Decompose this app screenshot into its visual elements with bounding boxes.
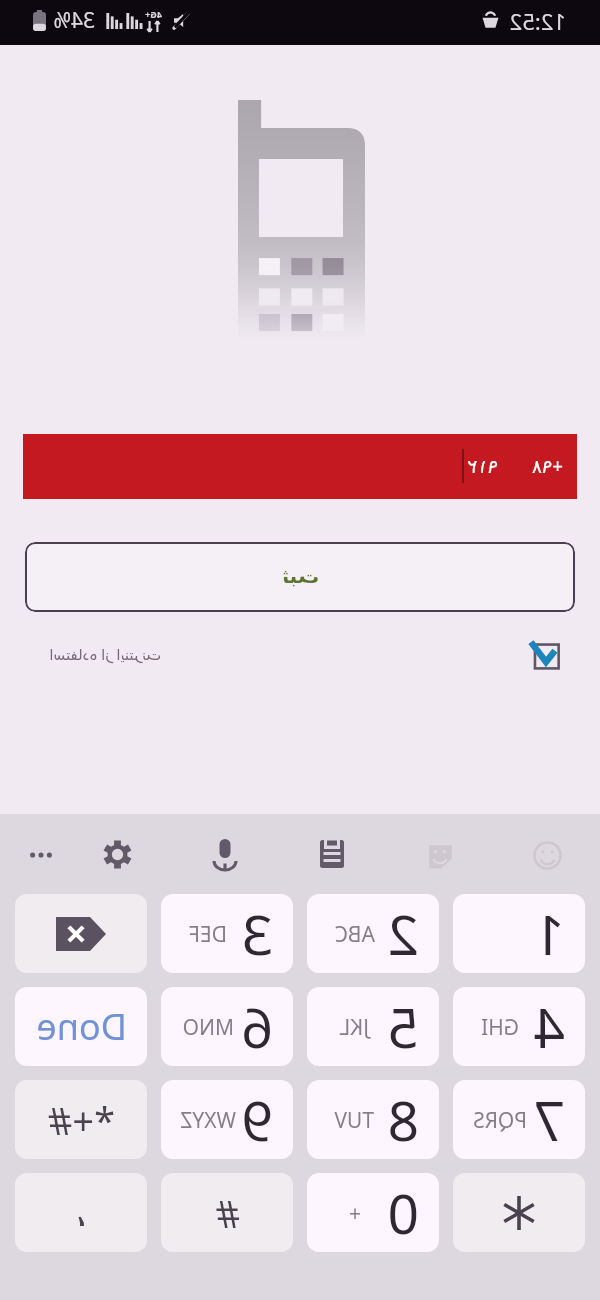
button[interactable]: TUV — [307, 1080, 439, 1159]
staticText: ، — [75, 1191, 88, 1235]
button[interactable]: WXYZ — [161, 1080, 293, 1159]
staticText: PQRS — [473, 1106, 527, 1135]
button[interactable]: PQRS — [453, 1080, 585, 1159]
button[interactable]: Emoji — [523, 831, 571, 879]
button[interactable]: More — [17, 831, 65, 879]
button[interactable]: + — [307, 1173, 439, 1252]
button[interactable]: # — [161, 1173, 293, 1252]
staticText: GHI — [481, 1013, 519, 1042]
staticText: 8 — [387, 1082, 419, 1157]
staticText: +۹۸ — [531, 453, 563, 479]
button[interactable]: Done — [15, 987, 147, 1066]
staticText: 9 — [241, 1082, 273, 1157]
other: Star — [502, 1196, 536, 1230]
staticText: 1 — [533, 896, 565, 971]
button[interactable]: ABC — [307, 894, 439, 973]
staticText: MNO — [182, 1013, 234, 1042]
button[interactable]: GHI — [453, 987, 585, 1066]
staticText: 12:52 — [509, 6, 566, 36]
staticText: Done — [36, 1002, 127, 1051]
button[interactable]: JKL — [307, 987, 439, 1066]
button[interactable]: Clipboard — [308, 830, 356, 878]
staticText: ثبت — [282, 564, 319, 587]
other: Delete — [56, 917, 106, 951]
staticText: 7 — [533, 1082, 565, 1157]
button[interactable]: Settings — [93, 830, 141, 878]
staticText: *+# — [47, 1094, 115, 1146]
button[interactable]: ثبت — [25, 542, 575, 612]
staticText: # — [215, 1187, 240, 1239]
staticText: 5 — [387, 989, 419, 1064]
staticText: 34% — [53, 6, 95, 35]
staticText: 4G+ — [145, 8, 162, 20]
staticText: ABC — [334, 920, 375, 949]
button[interactable]: Delete — [15, 894, 147, 973]
staticText: JKL — [339, 1013, 369, 1042]
button[interactable]: ۹۱۲ — [23, 434, 577, 499]
staticText: + — [348, 1199, 361, 1228]
button[interactable]: MNO — [161, 987, 293, 1066]
button[interactable]: 1 — [453, 894, 585, 973]
button[interactable]: DEF — [161, 894, 293, 973]
staticText: استفاده از اینترنت — [49, 644, 161, 664]
button[interactable]: Voice input — [201, 830, 249, 878]
staticText: 2 — [387, 896, 419, 971]
staticText: ۹۱۲ — [467, 455, 498, 477]
button[interactable]: Star — [453, 1173, 585, 1252]
staticText: 3 — [241, 896, 273, 971]
button[interactable]: Stickers — [416, 831, 464, 879]
staticText: 4 — [533, 989, 565, 1064]
staticText: 6 — [241, 989, 273, 1064]
button[interactable]: Use internet checkbox — [528, 636, 564, 672]
button[interactable]: *+# — [15, 1080, 147, 1159]
staticText: 0 — [387, 1175, 419, 1250]
staticText: DEF — [189, 920, 227, 949]
button[interactable]: ، — [15, 1173, 147, 1252]
staticText: WXYZ — [180, 1106, 236, 1135]
staticText: TUV — [334, 1106, 374, 1135]
